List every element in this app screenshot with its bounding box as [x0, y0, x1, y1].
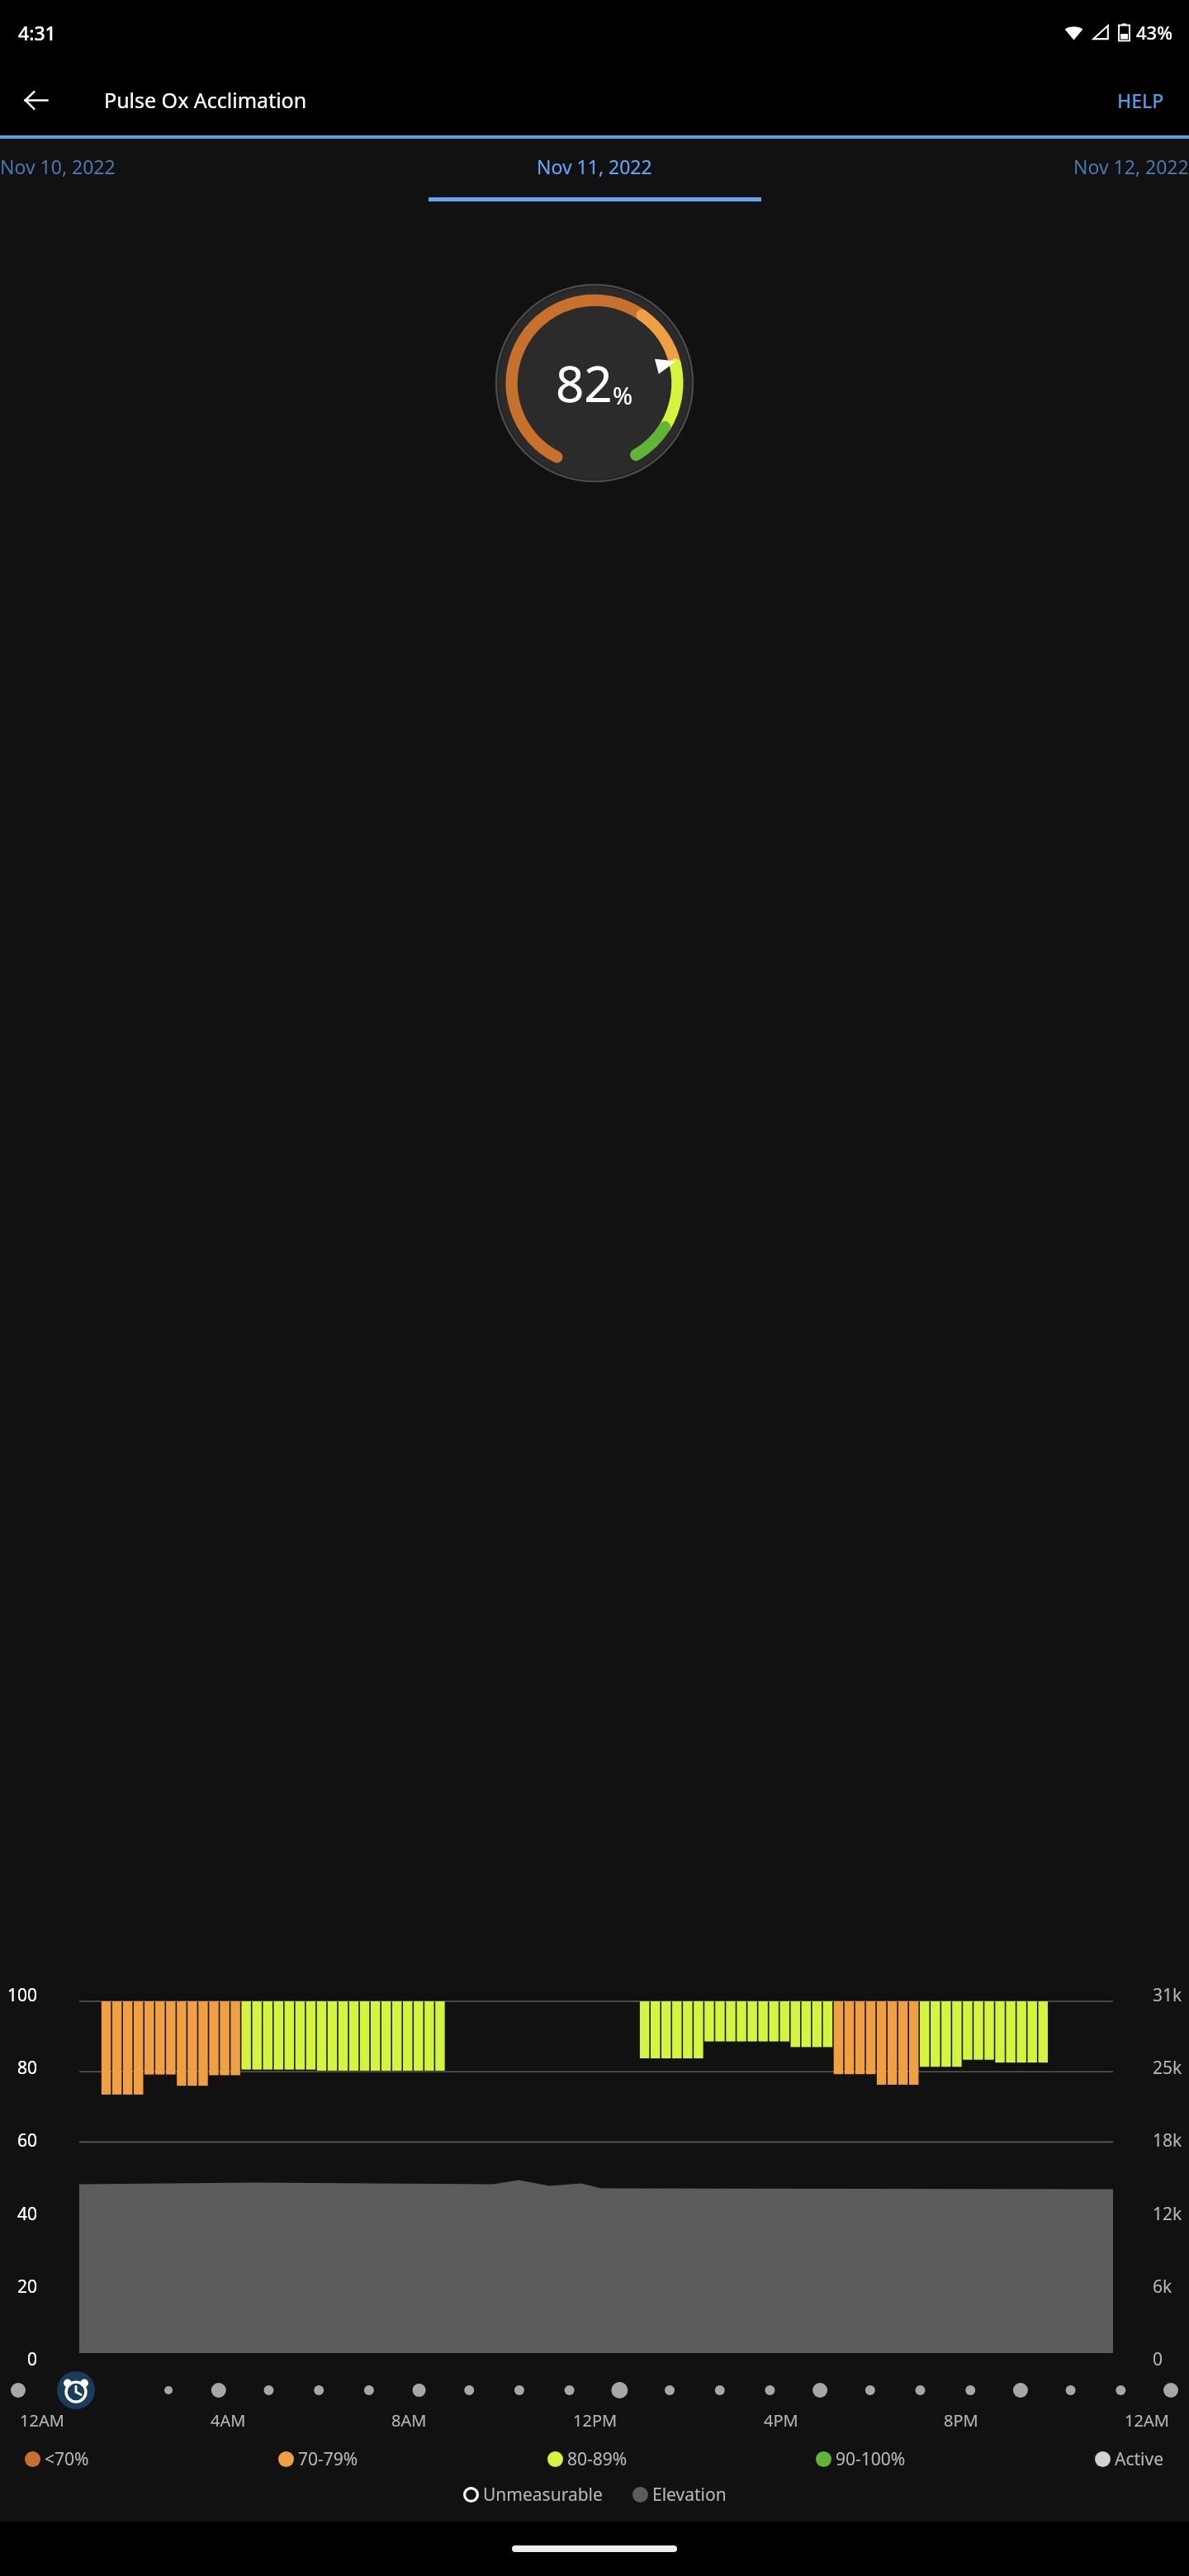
- staticText: 60: [17, 2129, 38, 2152]
- staticText: 4:31: [18, 20, 56, 45]
- staticText: 12AM: [20, 2409, 64, 2432]
- staticText: 0: [27, 2347, 38, 2371]
- staticText: Unmeasurable: [483, 2483, 603, 2507]
- button[interactable]: Unmeasurable: [463, 2483, 603, 2507]
- button[interactable]: Nov 11, 2022: [396, 139, 793, 201]
- staticText: 40: [17, 2202, 38, 2226]
- staticText: 6k: [1153, 2275, 1172, 2299]
- button[interactable]: 90-100%: [816, 2447, 906, 2471]
- staticText: 25k: [1153, 2056, 1182, 2080]
- staticText: 4AM: [211, 2409, 246, 2432]
- staticText: 43%: [1136, 20, 1172, 45]
- staticText: 12k: [1153, 2202, 1182, 2226]
- button[interactable]: Nov 12, 2022: [793, 139, 1189, 201]
- staticText: 70-79%: [298, 2447, 358, 2471]
- staticText: 20: [17, 2275, 38, 2299]
- staticText: Nov 10, 2022: [0, 154, 116, 179]
- staticText: 4PM: [764, 2409, 798, 2432]
- staticText: HELP: [1117, 88, 1164, 113]
- staticText: 90-100%: [836, 2447, 906, 2471]
- staticText: <70%: [45, 2447, 89, 2471]
- staticText: Nov 12, 2022: [1073, 154, 1189, 179]
- button[interactable]: 70-79%: [278, 2447, 358, 2471]
- button[interactable]: Alarm: [54, 2371, 97, 2409]
- staticText: 0: [1153, 2347, 1163, 2371]
- staticText: Nov 11, 2022: [537, 154, 652, 179]
- staticText: Pulse Ox Acclimation: [104, 86, 307, 114]
- staticText: 8PM: [944, 2409, 978, 2432]
- staticText: 12PM: [573, 2409, 618, 2432]
- staticText: 18k: [1153, 2129, 1182, 2152]
- staticText: 8AM: [391, 2409, 427, 2432]
- button[interactable]: Active: [1095, 2447, 1164, 2471]
- staticText: 82: [556, 349, 613, 417]
- staticText: 12AM: [1125, 2409, 1169, 2432]
- staticText: %: [613, 379, 633, 411]
- staticText: Active: [1115, 2447, 1164, 2471]
- button[interactable]: Back: [12, 76, 59, 124]
- staticText: 80-89%: [567, 2447, 628, 2471]
- staticText: 31k: [1153, 1983, 1182, 2007]
- button[interactable]: Elevation: [632, 2483, 727, 2507]
- button[interactable]: HELP: [1101, 76, 1181, 125]
- staticText: 80: [17, 2056, 38, 2080]
- button[interactable]: Nov 10, 2022: [0, 139, 396, 201]
- button[interactable]: <70%: [25, 2447, 89, 2471]
- button[interactable]: 80-89%: [547, 2447, 628, 2471]
- staticText: Elevation: [652, 2483, 727, 2507]
- staticText: 100: [7, 1983, 38, 2007]
